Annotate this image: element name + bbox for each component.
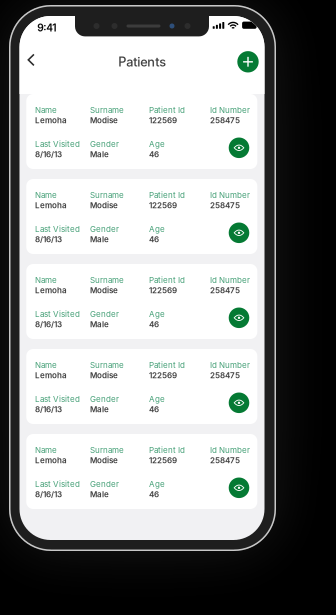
staticText: Name [35, 360, 57, 370]
staticText: Lemoha [35, 370, 67, 380]
staticText: Lemoha [35, 200, 67, 210]
staticText: Male [90, 234, 109, 244]
staticText: 122569 [149, 455, 177, 465]
staticText: Id Number [210, 190, 250, 200]
staticText: 122569 [149, 285, 177, 295]
staticText: 8/16/13 [35, 319, 62, 329]
staticText: Gender [90, 309, 119, 319]
staticText: 8/16/13 [35, 149, 62, 159]
staticText: Patient Id [149, 105, 185, 115]
staticText: Male [90, 149, 109, 159]
button[interactable]: View patient record [229, 307, 249, 328]
button[interactable]: View patient record [229, 222, 249, 243]
staticText: Surname [90, 105, 124, 115]
staticText: 258475 [210, 200, 240, 210]
staticText: 122569 [149, 200, 177, 210]
staticText: Gender [90, 479, 119, 489]
staticText: Surname [90, 190, 124, 200]
staticText: Gender [90, 139, 119, 149]
staticText: Last Visited [35, 479, 80, 489]
staticText: Age [149, 394, 165, 404]
staticText: 46 [149, 234, 159, 244]
button[interactable]: View patient record [229, 137, 249, 158]
staticText: Modise [90, 370, 118, 380]
staticText: Name [35, 190, 57, 200]
staticText: 258475 [210, 115, 240, 125]
staticText: 9:41 [37, 22, 56, 34]
staticText: Surname [90, 360, 124, 370]
button[interactable]: View patient record [229, 477, 249, 498]
staticText: Age [149, 309, 165, 319]
staticText: Name [35, 275, 57, 285]
staticText: Gender [90, 394, 119, 404]
staticText: Name [35, 445, 57, 455]
staticText: Modise [90, 200, 118, 210]
staticText: Name [35, 105, 57, 115]
staticText: 46 [149, 489, 159, 499]
button[interactable]: Add patient [236, 50, 260, 74]
staticText: Male [90, 319, 109, 329]
staticText: Age [149, 224, 165, 234]
staticText: Lemoha [35, 455, 67, 465]
staticText: 46 [149, 149, 159, 159]
staticText: Male [90, 489, 109, 499]
staticText: Modise [90, 455, 118, 465]
staticText: Gender [90, 224, 119, 234]
staticText: Patients [118, 54, 166, 69]
staticText: Id Number [210, 445, 250, 455]
staticText: Modise [90, 115, 118, 125]
staticText: Patient Id [149, 360, 185, 370]
staticText: 8/16/13 [35, 234, 62, 244]
button[interactable]: Back [20, 49, 42, 71]
staticText: Male [90, 404, 109, 414]
staticText: Last Visited [35, 394, 80, 404]
staticText: Patient Id [149, 190, 185, 200]
staticText: Id Number [210, 105, 250, 115]
staticText: 258475 [210, 285, 240, 295]
staticText: 46 [149, 319, 159, 329]
button[interactable]: View patient record [229, 392, 249, 413]
staticText: Last Visited [35, 309, 80, 319]
staticText: Last Visited [35, 139, 80, 149]
staticText: Id Number [210, 275, 250, 285]
staticText: Age [149, 139, 165, 149]
staticText: Patient Id [149, 445, 185, 455]
staticText: Id Number [210, 360, 250, 370]
staticText: 122569 [149, 115, 177, 125]
staticText: Surname [90, 445, 124, 455]
staticText: Modise [90, 285, 118, 295]
staticText: Last Visited [35, 224, 80, 234]
staticText: Lemoha [35, 285, 67, 295]
staticText: 8/16/13 [35, 404, 62, 414]
staticText: 8/16/13 [35, 489, 62, 499]
staticText: Surname [90, 275, 124, 285]
staticText: 258475 [210, 370, 240, 380]
staticText: Age [149, 479, 165, 489]
staticText: Patient Id [149, 275, 185, 285]
staticText: 122569 [149, 370, 177, 380]
staticText: 46 [149, 404, 159, 414]
staticText: 258475 [210, 455, 240, 465]
staticText: Lemoha [35, 115, 67, 125]
